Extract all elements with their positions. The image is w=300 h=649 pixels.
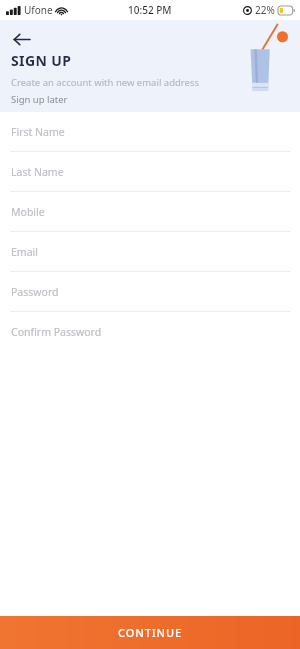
staticText: First Name bbox=[11, 125, 65, 139]
button[interactable]: Password bbox=[0, 272, 300, 312]
button[interactable]: Sign up later bbox=[11, 93, 68, 106]
staticText: 22% bbox=[255, 3, 275, 17]
staticText: Create an account with new email address bbox=[11, 76, 200, 89]
button[interactable]: Mobile bbox=[0, 192, 300, 232]
staticText: SIGN UP bbox=[11, 51, 72, 70]
button[interactable]: First Name bbox=[0, 112, 300, 152]
staticText: Last Name bbox=[11, 165, 64, 179]
staticText: Confirm Password bbox=[11, 325, 102, 339]
staticText: Email bbox=[11, 245, 38, 259]
button[interactable]: Email bbox=[0, 232, 300, 272]
staticText: CONTINUE bbox=[118, 625, 182, 640]
staticText: Mobile bbox=[11, 205, 45, 219]
button[interactable]: Last Name bbox=[0, 152, 300, 192]
button[interactable]: Confirm Password bbox=[0, 312, 300, 352]
staticText: Password bbox=[11, 285, 59, 299]
staticText: Ufone bbox=[24, 3, 53, 17]
button[interactable]: Back bbox=[6, 24, 36, 54]
button[interactable]: CONTINUE bbox=[0, 616, 300, 649]
staticText: Sign up later bbox=[11, 93, 68, 106]
staticText: 10:52 PM bbox=[128, 3, 172, 17]
